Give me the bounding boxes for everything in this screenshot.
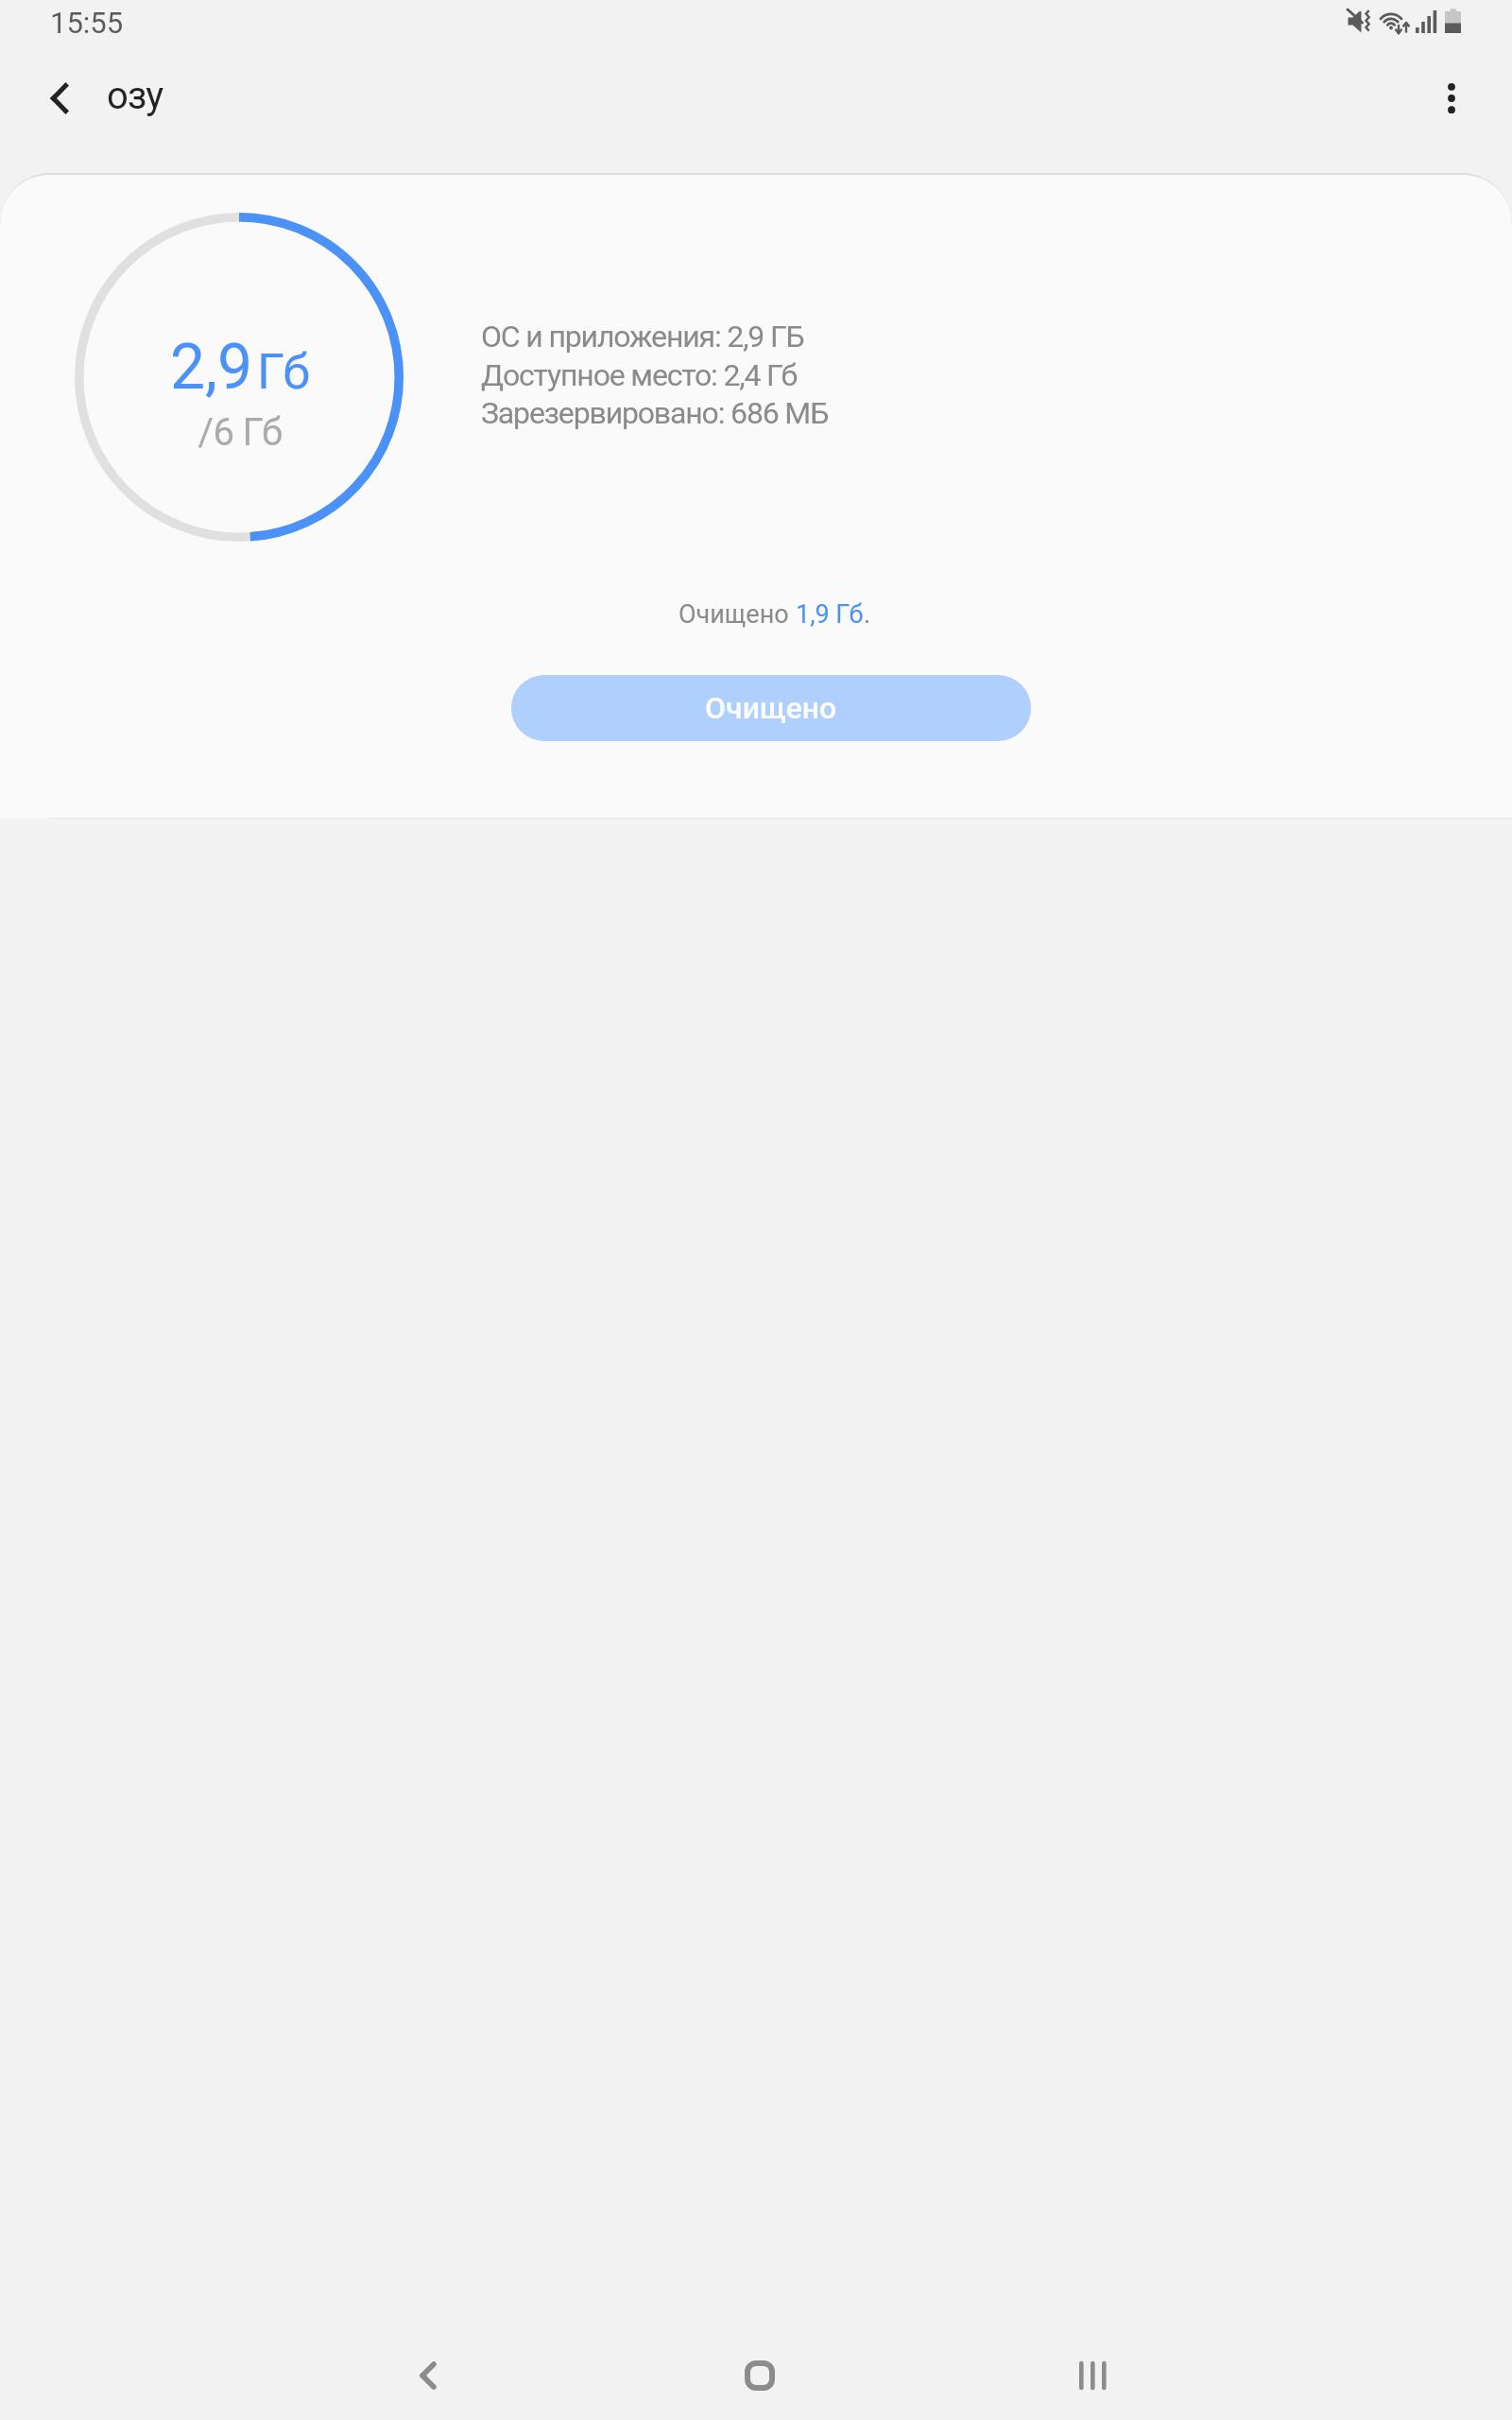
button[interactable]: Back bbox=[22, 60, 97, 136]
staticText: ОС и приложения: 2,9 ГБ bbox=[481, 319, 804, 354]
staticText: Очищено bbox=[705, 690, 837, 726]
button[interactable]: More options bbox=[1414, 60, 1489, 136]
staticText: . bbox=[864, 599, 871, 630]
button[interactable]: Home bbox=[713, 2328, 807, 2420]
staticText: Зарезервировано: 686 МБ bbox=[481, 395, 829, 431]
staticText: 2,9 bbox=[170, 331, 253, 404]
staticText: Гб bbox=[257, 343, 310, 401]
staticText: Очищено bbox=[679, 599, 796, 630]
button[interactable]: Back bbox=[381, 2328, 475, 2420]
staticText: 15:55 bbox=[50, 6, 124, 40]
staticText: озу bbox=[107, 74, 163, 118]
button[interactable]: Recent apps bbox=[1045, 2328, 1140, 2420]
staticText: /6 Гб bbox=[76, 410, 404, 455]
staticText: 1,9 Гб bbox=[796, 599, 864, 630]
button[interactable]: Очищено bbox=[511, 675, 1031, 741]
staticText: Доступное место: 2,4 Гб bbox=[481, 357, 798, 393]
